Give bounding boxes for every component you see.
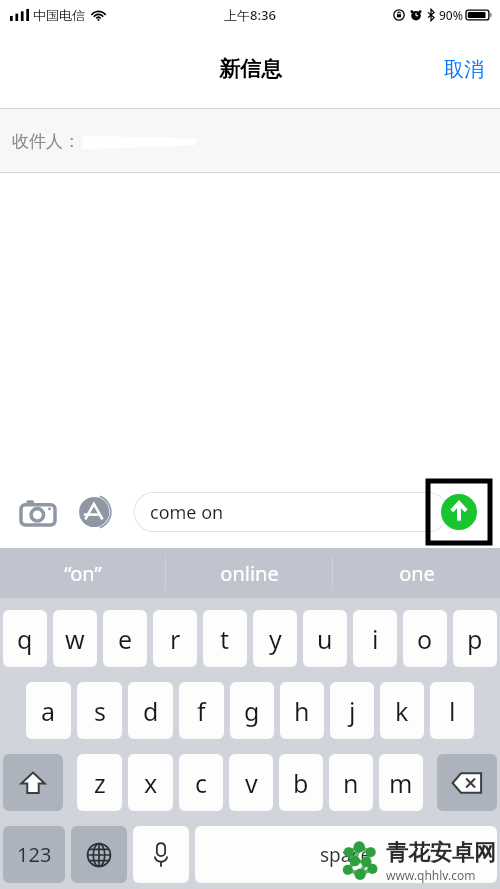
staticText: one [399, 560, 435, 587]
staticText: c [195, 766, 208, 800]
staticText: e [118, 622, 133, 656]
button[interactable]: Camera [18, 492, 58, 532]
button[interactable]: Backspace [437, 754, 497, 811]
button[interactable]: Dictation [133, 826, 189, 883]
button[interactable]: e [103, 610, 147, 667]
button[interactable]: “on” [0, 548, 166, 598]
button[interactable]: m [379, 754, 423, 811]
button[interactable]: s [77, 682, 122, 739]
staticText: 青花安卓网 [386, 839, 496, 867]
button[interactable]: i [353, 610, 397, 667]
staticText: d [143, 694, 159, 728]
button[interactable]: f [179, 682, 224, 739]
button[interactable]: u [303, 610, 347, 667]
staticText: b [293, 766, 309, 800]
button[interactable]: w [53, 610, 97, 667]
staticText: 上午8:36 [224, 6, 276, 24]
button[interactable]: k [380, 682, 424, 739]
staticText: n [343, 766, 359, 800]
button[interactable]: v [229, 754, 273, 811]
staticText: j [349, 694, 356, 728]
staticText: w [65, 622, 85, 656]
button[interactable]: 收件人： [0, 109, 500, 172]
button[interactable]: r [153, 610, 197, 667]
staticText: q [17, 622, 33, 656]
staticText: come on [150, 500, 224, 525]
button[interactable]: come on [134, 492, 448, 532]
staticText: k [395, 694, 409, 728]
button[interactable]: c [179, 754, 223, 811]
button[interactable]: t [203, 610, 247, 667]
staticText: l [449, 694, 456, 728]
button[interactable]: b [279, 754, 323, 811]
staticText: m [389, 766, 413, 800]
staticText: f [197, 694, 206, 728]
button[interactable]: Next keyboard [71, 826, 127, 883]
staticText: 取消 [444, 57, 484, 82]
staticText: “on” [64, 560, 102, 587]
button[interactable]: n [329, 754, 373, 811]
button[interactable]: a [26, 682, 71, 739]
button[interactable]: Shift [3, 754, 63, 811]
button[interactable]: x [128, 754, 173, 811]
staticText: space [320, 842, 372, 868]
button[interactable]: Send [428, 481, 490, 543]
button[interactable]: j [330, 682, 374, 739]
staticText: i [372, 622, 379, 656]
button[interactable]: o [403, 610, 447, 667]
staticText: p [467, 622, 483, 656]
staticText: x [144, 766, 158, 800]
staticText: online [220, 560, 279, 587]
staticText: 收件人： [12, 131, 80, 152]
button[interactable]: 123 [3, 826, 65, 883]
staticText: t [220, 622, 230, 656]
staticText: y [269, 622, 282, 656]
staticText: g [244, 694, 260, 728]
button[interactable]: d [128, 682, 173, 739]
button[interactable]: p [453, 610, 497, 667]
button[interactable]: z [77, 754, 122, 811]
staticText: z [94, 766, 106, 800]
staticText: r [170, 622, 181, 656]
staticText: a [41, 694, 56, 728]
staticText: u [317, 622, 333, 656]
staticText: h [294, 694, 310, 728]
staticText: www.qhhlv.com [386, 867, 476, 883]
staticText: 新信息 [219, 56, 282, 82]
staticText: o [417, 622, 433, 656]
button[interactable]: one [333, 548, 500, 598]
button[interactable]: q [3, 610, 47, 667]
button[interactable]: h [280, 682, 324, 739]
staticText: v [245, 766, 258, 800]
staticText: 90% [439, 7, 463, 23]
staticText: s [94, 694, 106, 728]
button[interactable]: App Store [76, 492, 116, 532]
button[interactable]: g [230, 682, 274, 739]
button[interactable]: 取消 [428, 47, 500, 92]
staticText: 中国电信 [33, 7, 85, 23]
button[interactable]: online [166, 548, 333, 598]
staticText: 123 [17, 841, 52, 868]
button[interactable]: l [430, 682, 474, 739]
button[interactable]: y [253, 610, 297, 667]
button[interactable]: space [195, 826, 497, 883]
